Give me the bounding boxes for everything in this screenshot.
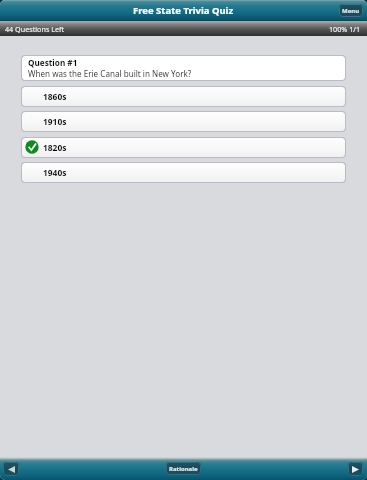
staticText: When was the Erie Canal built in New Yor… <box>28 68 192 79</box>
button[interactable]: 1910s <box>22 112 345 131</box>
staticText: 1940s <box>43 167 67 178</box>
staticText: 1820s <box>43 142 67 153</box>
staticText: Question #1 <box>28 57 78 68</box>
button[interactable]: Previous question <box>3 462 19 476</box>
button[interactable]: 1860s <box>22 87 345 106</box>
staticText: 1910s <box>43 116 67 127</box>
staticText: Rationale <box>169 465 198 473</box>
staticText: 44 Questions Left <box>5 24 65 34</box>
button[interactable]: Question #1 <box>22 56 345 80</box>
staticText: 100% 1/1 <box>329 24 361 34</box>
staticText: Menu <box>342 7 360 15</box>
staticText: 1860s <box>43 91 67 102</box>
button[interactable]: Menu <box>339 4 363 17</box>
staticText: Free State Trivia Quiz <box>133 4 234 17</box>
button[interactable]: Next question <box>348 462 363 476</box>
button[interactable]: 1940s <box>22 163 345 182</box>
button[interactable]: Rationale <box>166 462 201 475</box>
button[interactable]: 1820s <box>22 138 345 157</box>
